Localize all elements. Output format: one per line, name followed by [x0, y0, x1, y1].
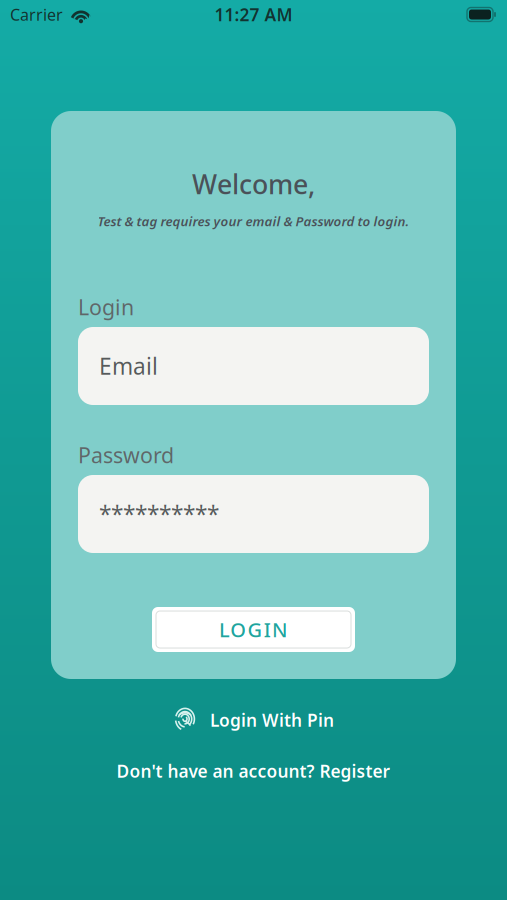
staticText: Welcome,: [192, 166, 315, 202]
staticText: Carrier: [10, 4, 63, 25]
staticText: **********: [99, 499, 219, 529]
button[interactable]: Don't have an account? Register: [116, 760, 390, 782]
staticText: Login: [78, 293, 134, 321]
button[interactable]: LOGIN: [152, 607, 355, 652]
staticText: Email: [99, 351, 158, 381]
button[interactable]: Login With Pin: [173, 704, 334, 736]
staticText: Password: [78, 441, 174, 469]
staticText: 11:27 AM: [214, 3, 292, 26]
staticText: LOGIN: [219, 616, 288, 643]
staticText: Don't have an account? Register: [116, 759, 390, 782]
staticText: Login With Pin: [210, 708, 334, 731]
staticText: Test & tag requires your email & Passwor…: [97, 212, 409, 230]
